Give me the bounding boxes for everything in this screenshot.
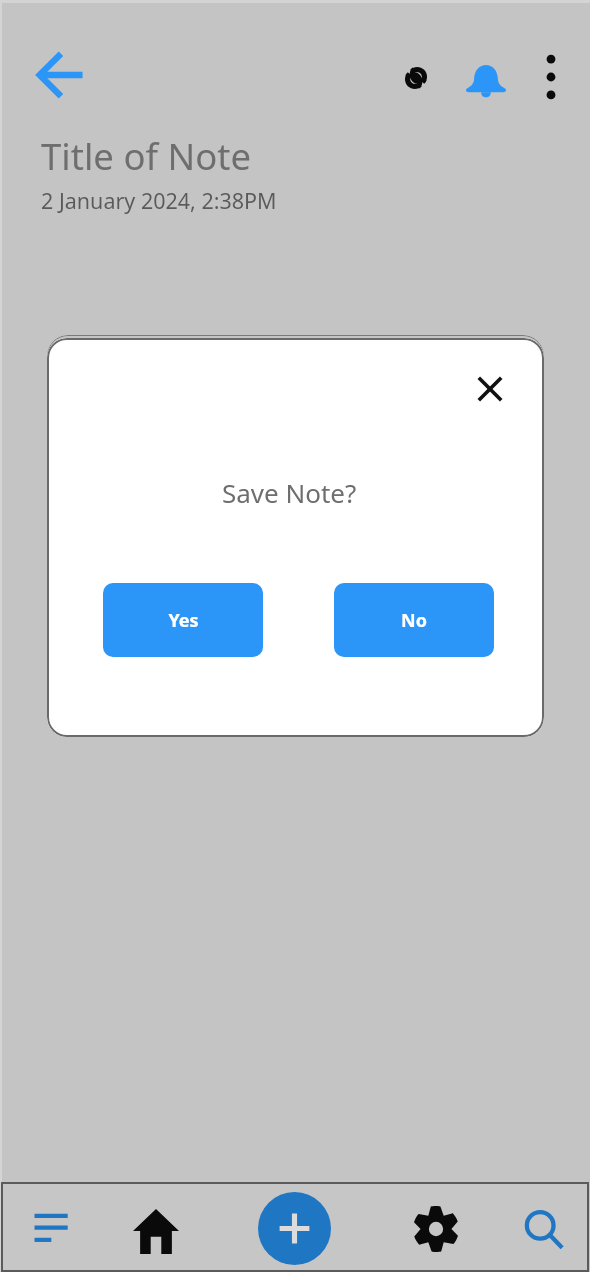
button[interactable]: More options [518, 44, 583, 109]
button[interactable]: Search [509, 1195, 579, 1265]
staticText: 2 January 2024, 2:38PM [41, 186, 277, 215]
button[interactable]: Notifications [454, 44, 518, 108]
staticText: Yes [168, 608, 199, 633]
button[interactable]: No [334, 583, 494, 657]
button[interactable]: Attach [384, 46, 448, 110]
staticText: Title of Note [41, 131, 252, 181]
button[interactable]: Home [121, 1196, 191, 1266]
button[interactable]: Close [463, 362, 517, 416]
staticText: No [401, 608, 427, 633]
button[interactable]: Yes [103, 583, 263, 657]
button[interactable]: Back [26, 41, 94, 109]
button[interactable]: Add [258, 1192, 331, 1265]
staticText: Save Note? [222, 475, 357, 510]
button[interactable]: Settings [401, 1194, 471, 1264]
button[interactable]: Menu [18, 1191, 88, 1261]
